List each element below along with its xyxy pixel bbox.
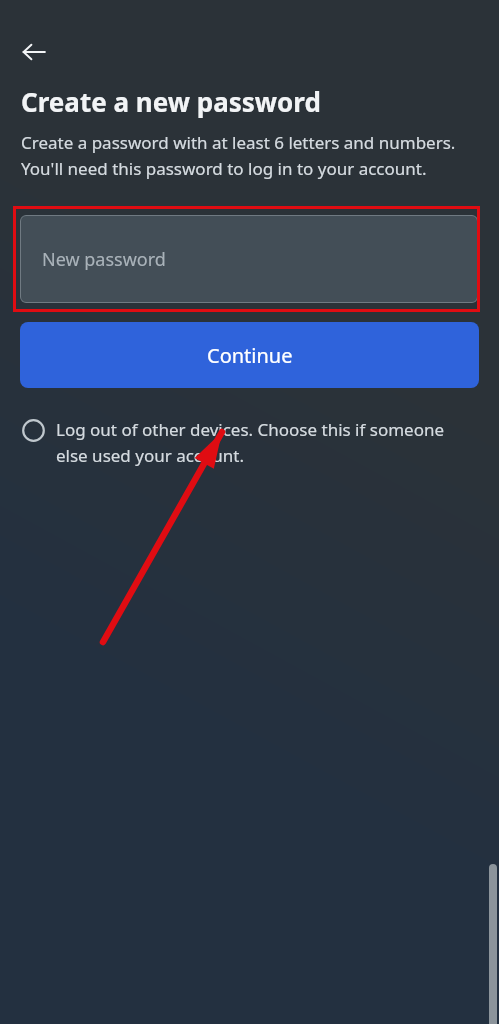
staticText: New password <box>42 247 166 272</box>
button[interactable]: Back <box>14 32 54 72</box>
button[interactable]: New password <box>20 215 478 303</box>
button[interactable]: Continue <box>20 322 479 388</box>
staticText: Create a new password <box>21 84 321 119</box>
staticText: Log out of other devices. Choose this if… <box>56 418 469 467</box>
staticText: Continue <box>207 342 293 369</box>
button[interactable]: Log out of other devices. Choose this if… <box>21 418 469 467</box>
staticText: Create a password with at least 6 letter… <box>21 131 477 180</box>
